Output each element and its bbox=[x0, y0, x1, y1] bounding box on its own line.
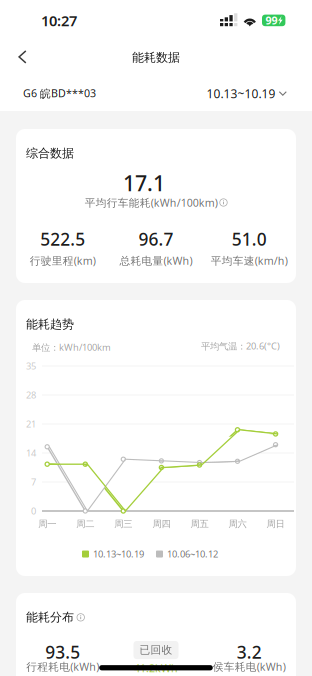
staticText: 单位：kWh/100km bbox=[32, 341, 111, 353]
staticText: 行程耗电(kWh) bbox=[26, 660, 99, 674]
staticText: 35 bbox=[26, 360, 36, 372]
staticText: 99 bbox=[266, 13, 278, 27]
staticText: 51.0 bbox=[232, 227, 267, 250]
staticText: 能耗数据 bbox=[132, 50, 180, 65]
staticText: 周三 bbox=[114, 518, 132, 530]
staticText: 3.2 bbox=[237, 641, 262, 664]
staticText: 周五 bbox=[190, 518, 208, 530]
staticText: 能耗分布 bbox=[26, 610, 74, 625]
staticText: 41.2kWh bbox=[134, 661, 178, 675]
staticText: 周四 bbox=[152, 518, 170, 530]
staticText: 综合数据 bbox=[26, 146, 74, 161]
staticText: 14 bbox=[26, 447, 36, 459]
staticText: 93.5 bbox=[45, 641, 80, 664]
staticText: 96.7 bbox=[138, 227, 173, 250]
staticText: 行驶里程(km) bbox=[30, 253, 96, 268]
staticText: 522.5 bbox=[40, 227, 85, 250]
staticText: 0 bbox=[31, 505, 36, 517]
staticText: 21 bbox=[26, 418, 36, 430]
staticText: 已回收 bbox=[139, 643, 172, 657]
staticText: G6 皖BD***03 bbox=[23, 86, 96, 100]
staticText: 28 bbox=[26, 389, 36, 401]
staticText: 周二 bbox=[76, 518, 94, 530]
button[interactable]: 返回 bbox=[0, 40, 43, 74]
button[interactable]: 10.13~10.19 bbox=[197, 79, 312, 107]
staticText: 总耗电量(kWh) bbox=[119, 253, 192, 268]
staticText: 平均气温：20.6(°C) bbox=[201, 340, 280, 352]
staticText: 平均行车能耗(kWh/100km) bbox=[85, 195, 218, 210]
staticText: 周日 bbox=[267, 518, 285, 530]
staticText: 平均车速(km/h) bbox=[211, 253, 288, 268]
staticText: 10:27 bbox=[41, 11, 77, 30]
staticText: 17.1 bbox=[123, 169, 165, 197]
staticText: 10.13~10.19 bbox=[93, 548, 144, 560]
staticText: 7 bbox=[31, 476, 36, 488]
staticText: 10.13~10.19 bbox=[207, 85, 276, 101]
staticText: 侯车耗电(kWh) bbox=[213, 660, 286, 674]
staticText: 能耗趋势 bbox=[26, 317, 74, 332]
staticText: 周六 bbox=[228, 518, 246, 530]
staticText: 周一 bbox=[38, 518, 56, 530]
staticText: 10.06~10.12 bbox=[167, 548, 218, 560]
